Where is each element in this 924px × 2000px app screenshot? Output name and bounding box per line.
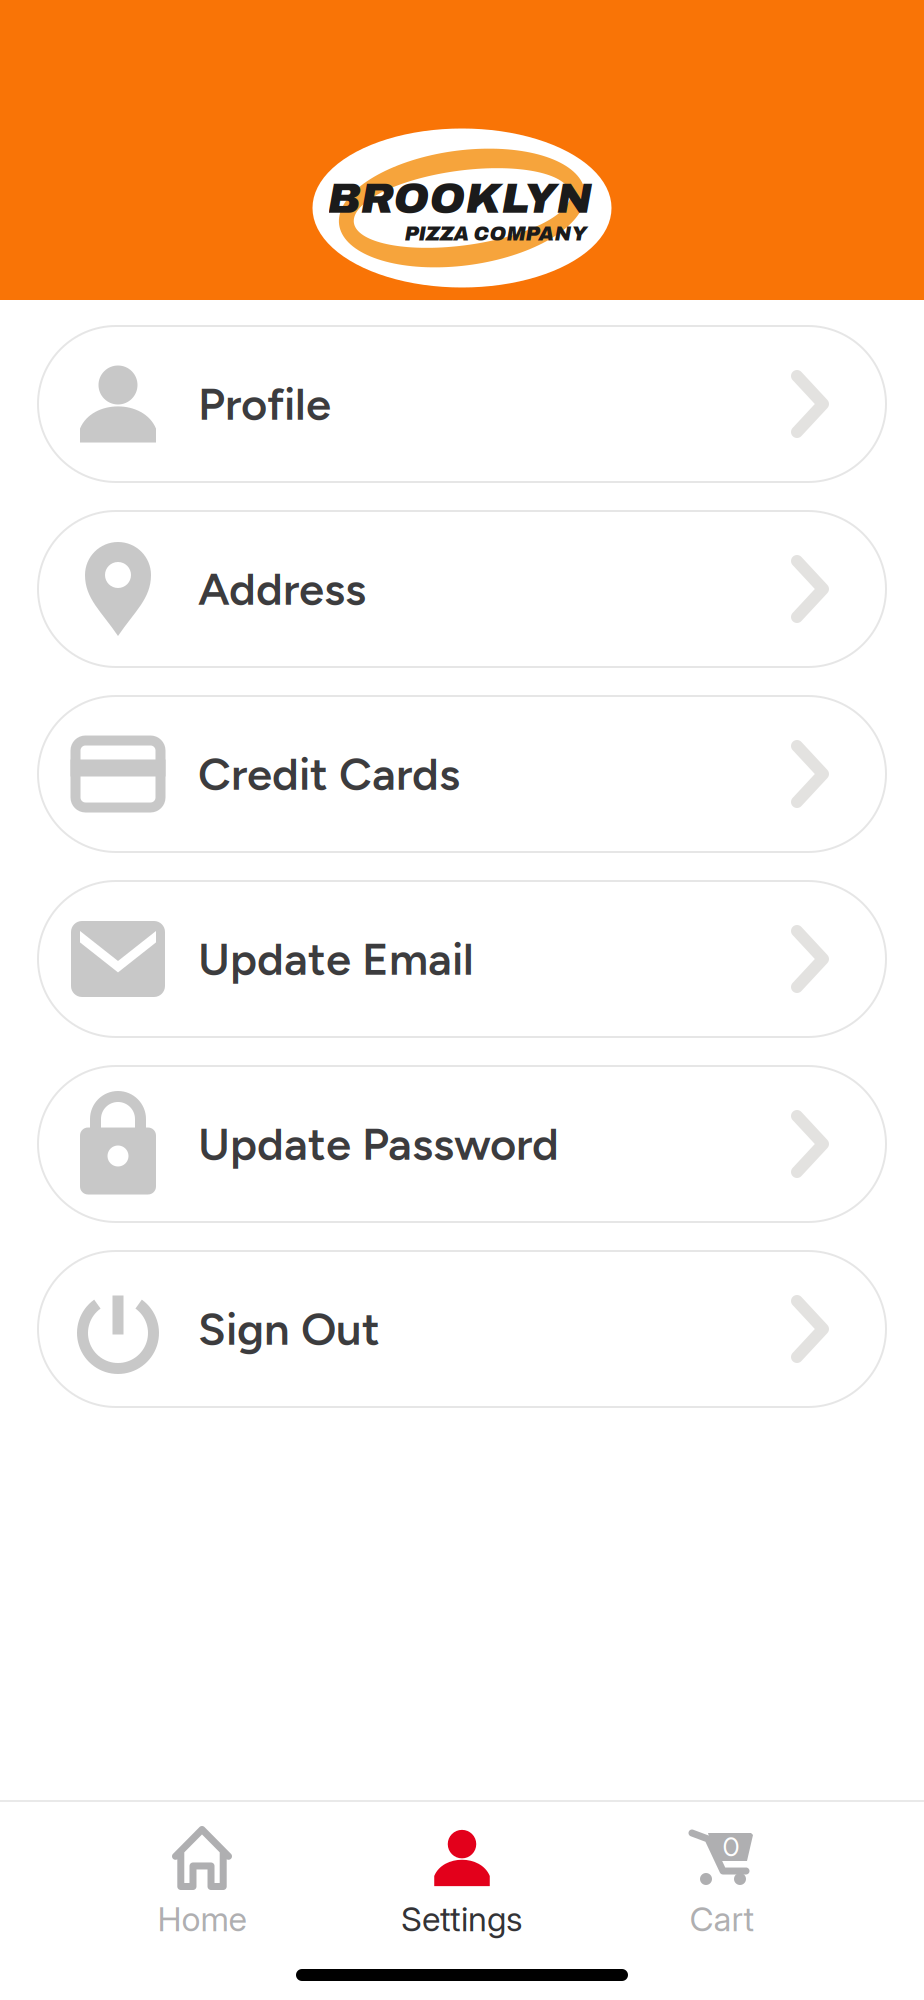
staticText: Address: [198, 562, 366, 616]
button[interactable]: 0: [622, 1827, 822, 1939]
button[interactable]: Profile: [38, 326, 886, 482]
staticText: BROOKLYN: [327, 175, 592, 222]
button[interactable]: Home: [102, 1827, 302, 1939]
button[interactable]: Settings: [362, 1827, 562, 1939]
button[interactable]: Sign Out: [38, 1251, 886, 1407]
staticText: Update Password: [198, 1117, 559, 1171]
staticText: Cart: [689, 1899, 754, 1939]
button[interactable]: Update Email: [38, 881, 886, 1037]
button[interactable]: Address: [38, 511, 886, 667]
staticText: Credit Cards: [198, 747, 460, 801]
staticText: Settings: [401, 1899, 523, 1939]
button[interactable]: Update Password: [38, 1066, 886, 1222]
staticText: Profile: [198, 377, 331, 431]
staticText: Update Email: [198, 932, 474, 986]
staticText: Home: [157, 1899, 246, 1939]
staticText: Sign Out: [198, 1302, 380, 1356]
staticText: PIZZA COMPANY: [404, 223, 587, 245]
button[interactable]: Credit Cards: [38, 696, 886, 852]
staticText: 0: [722, 1831, 739, 1863]
